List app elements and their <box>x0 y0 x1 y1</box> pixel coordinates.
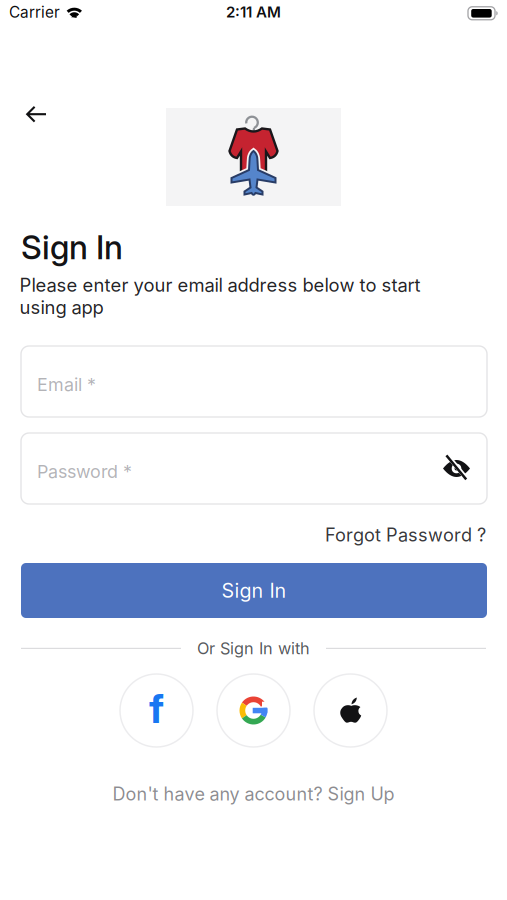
button[interactable] <box>314 674 387 747</box>
button[interactable]: Forgot Password ? <box>325 524 486 546</box>
staticText: Don't have any account? <box>112 783 327 805</box>
staticText: Or Sign In with <box>197 638 310 658</box>
staticText: Please enter your email address below to… <box>19 274 420 318</box>
button[interactable]: f <box>120 674 193 747</box>
staticText: Sign In <box>21 227 123 267</box>
button[interactable]: Password * <box>21 433 487 504</box>
button[interactable]: Email * <box>21 346 487 417</box>
staticText: f <box>149 684 164 733</box>
staticText: Email * <box>37 374 96 395</box>
staticText: Sign In <box>221 579 286 602</box>
staticText: Sign Up <box>327 783 394 805</box>
staticText: Carrier <box>9 3 60 22</box>
button[interactable]: Sign In <box>21 563 487 618</box>
button[interactable]: Sign Up <box>327 783 394 805</box>
button[interactable] <box>16 96 56 132</box>
staticText: 2:11 AM <box>226 3 281 21</box>
staticText: Forgot Password ? <box>325 524 486 546</box>
button[interactable] <box>217 674 290 747</box>
staticText: Password * <box>37 461 132 482</box>
